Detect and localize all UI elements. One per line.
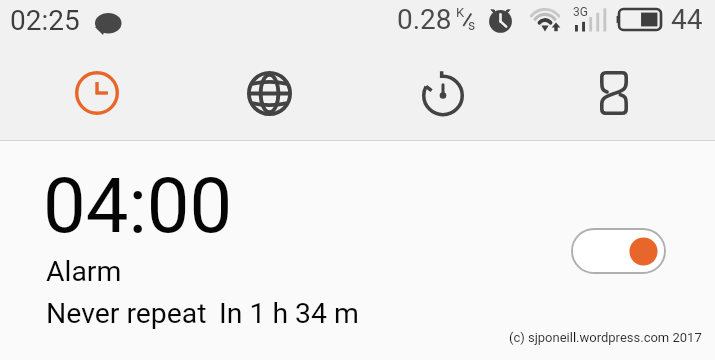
button[interactable]: Stopwatch (345, 45, 540, 141)
staticText: In 1 h 34 m (219, 297, 359, 330)
staticText: 02:25 (10, 4, 80, 37)
staticText: (c) sjponeill.wordpress.com 2017 (509, 330, 702, 345)
button[interactable]: 04:00 (0, 142, 715, 332)
button[interactable]: Toggle alarm (571, 228, 666, 274)
button[interactable]: Timer (527, 45, 701, 141)
button[interactable]: Alarm (0, 45, 193, 141)
staticText: Never repeat (46, 297, 207, 330)
staticText: K (456, 5, 465, 20)
staticText: 44 (671, 3, 703, 36)
staticText: Alarm (46, 255, 122, 288)
staticText: 04:00 (43, 161, 233, 250)
button[interactable]: World clock (193, 45, 345, 141)
staticText: 0.28 (397, 3, 452, 36)
staticText: s (468, 17, 476, 33)
staticText: 3G (573, 5, 588, 19)
